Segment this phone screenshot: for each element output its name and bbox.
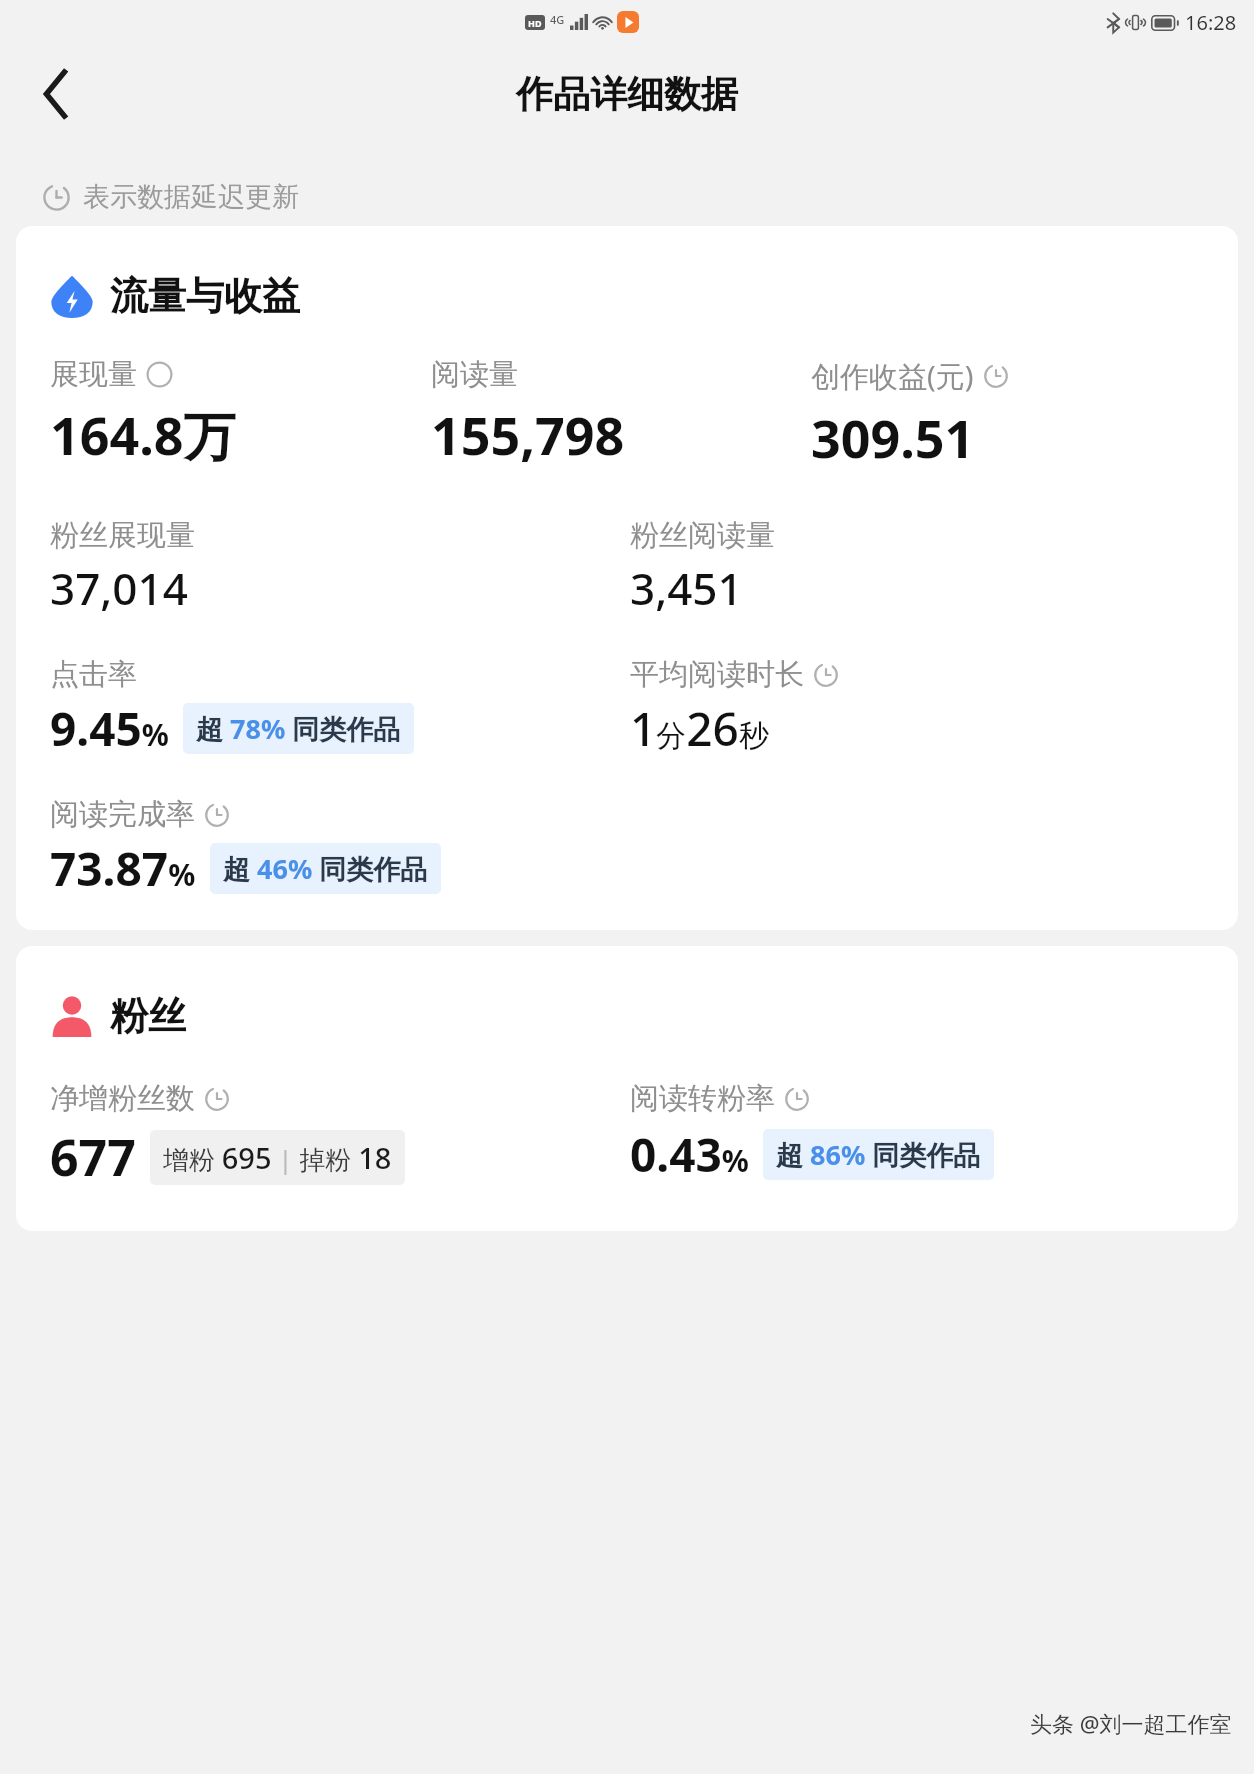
staticText: 164.8万 — [50, 399, 236, 470]
staticText: 粉丝展现量 — [50, 517, 195, 554]
staticText: 9.45% — [50, 697, 169, 760]
staticText: 净增粉丝数 — [50, 1080, 195, 1117]
staticText: 粉丝阅读量 — [630, 517, 775, 554]
staticText: 37,014 — [50, 558, 188, 618]
button[interactable]: 超 86% 同类作品 — [763, 1129, 994, 1180]
staticText: 展现量 — [50, 356, 137, 393]
staticText: 头条 @刘一超工作室 — [1030, 1708, 1232, 1738]
staticText: 点击率 — [50, 656, 137, 693]
staticText: 16:28 — [1185, 9, 1237, 36]
staticText: 粉丝 — [110, 992, 186, 1040]
staticText: 表示数据延迟更新 — [83, 180, 299, 214]
button[interactable]: Back — [20, 58, 92, 130]
staticText: 创作收益(元) — [811, 356, 974, 396]
staticText: 4G — [550, 12, 565, 27]
staticText: 1分26秒 — [630, 697, 769, 760]
staticText: 3,451 — [630, 558, 743, 618]
staticText: 0.43% — [630, 1123, 749, 1186]
staticText: 73.87% — [50, 837, 196, 900]
staticText: 155,798 — [431, 399, 625, 470]
staticText: 平均阅读时长 — [630, 656, 804, 693]
staticText: 阅读完成率 — [50, 796, 195, 833]
staticText: 流量与收益 — [110, 272, 300, 320]
staticText: 677 — [50, 1123, 136, 1191]
staticText: 增粉 695 | 掉粉 18 — [163, 1138, 392, 1177]
staticText: 作品详细数据 — [516, 71, 738, 118]
staticText: 309.51 — [811, 402, 975, 473]
button[interactable]: 超 46% 同类作品 — [210, 843, 441, 894]
staticText: 超 46% 同类作品 — [223, 850, 428, 887]
staticText: HD — [528, 17, 542, 29]
staticText: 超 78% 同类作品 — [196, 710, 401, 747]
staticText: 阅读量 — [431, 356, 518, 393]
staticText: 阅读转粉率 — [630, 1080, 775, 1117]
staticText: 超 86% 同类作品 — [776, 1136, 981, 1173]
button[interactable]: 增粉 695 | 掉粉 18 — [150, 1130, 405, 1185]
button[interactable]: 超 78% 同类作品 — [183, 703, 414, 754]
